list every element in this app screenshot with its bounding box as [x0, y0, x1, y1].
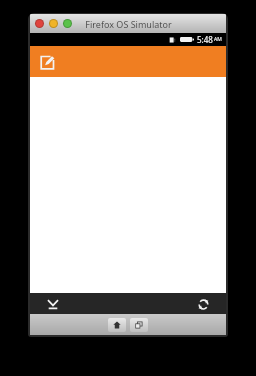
staticText: AM [214, 36, 222, 43]
button[interactable]: Home [108, 318, 126, 332]
button[interactable]: Compose new message [36, 51, 58, 73]
staticText: Firefox OS Simulator [85, 18, 172, 30]
button[interactable]: Refresh [194, 295, 212, 313]
button[interactable]: Download [44, 295, 62, 313]
button[interactable]: Recent apps [130, 318, 148, 332]
staticText: 5:48 [197, 34, 213, 45]
